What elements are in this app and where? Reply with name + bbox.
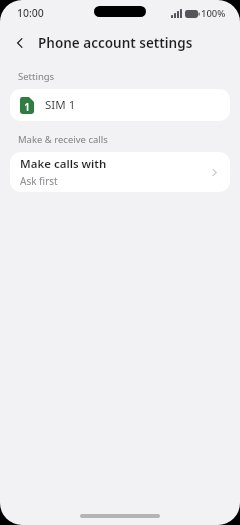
button[interactable]: 1 bbox=[10, 89, 230, 121]
button[interactable]: Make calls with bbox=[10, 152, 230, 192]
staticText: 1 bbox=[24, 100, 30, 114]
staticText: SIM 1 bbox=[45, 97, 76, 113]
button[interactable]: Back bbox=[6, 29, 34, 57]
staticText: 10:00 bbox=[17, 6, 44, 20]
staticText: Make & receive calls bbox=[18, 133, 108, 146]
staticText: 100% bbox=[201, 7, 226, 20]
staticText: Phone account settings bbox=[38, 34, 193, 52]
staticText: Settings bbox=[18, 70, 55, 83]
staticText: Ask first bbox=[20, 174, 58, 188]
staticText: Make calls with bbox=[20, 156, 107, 172]
